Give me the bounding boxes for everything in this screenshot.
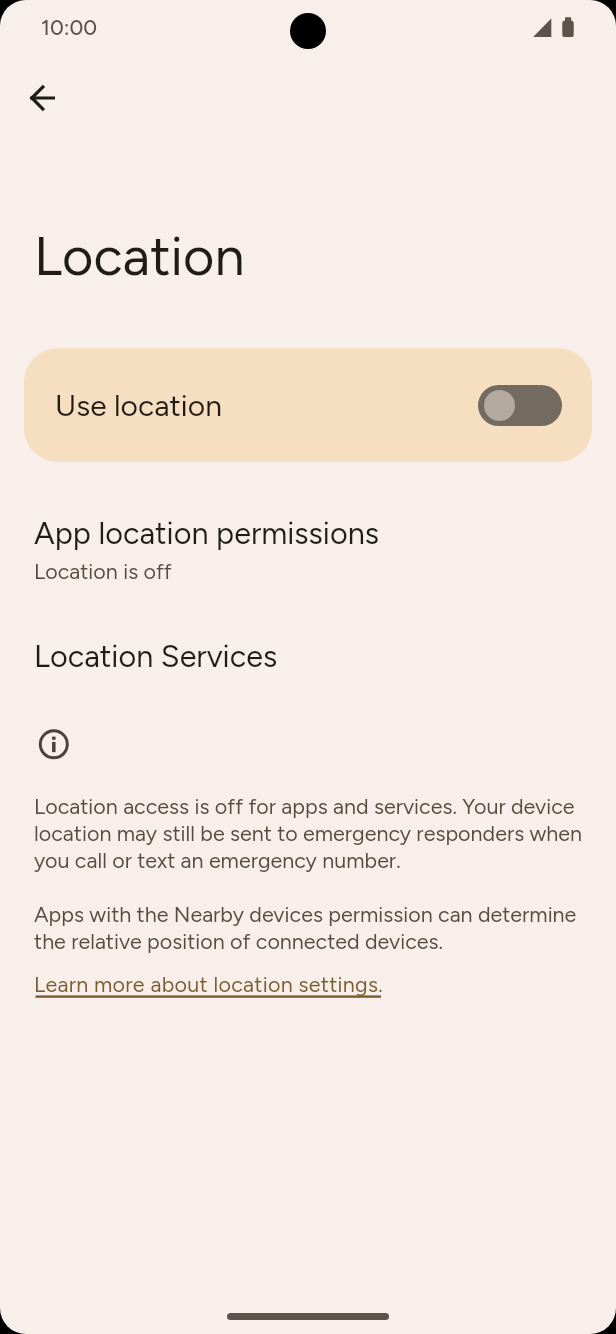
staticText: Apps with the Nearby devices permission …: [34, 902, 594, 955]
staticText: Location access is off for apps and serv…: [34, 794, 594, 874]
staticText: 10:00: [41, 15, 98, 41]
button[interactable]: Back: [14, 70, 70, 126]
staticText: Location: [34, 224, 245, 289]
staticText: Location is off: [34, 559, 172, 585]
staticText: Location Services: [34, 638, 278, 675]
button[interactable]: Use location: [24, 348, 592, 462]
staticText: Use location: [55, 387, 222, 423]
staticText: Learn more about location settings.: [34, 972, 383, 998]
button[interactable]: Learn more about location settings.: [34, 972, 383, 998]
staticText: App location permissions: [34, 515, 380, 552]
